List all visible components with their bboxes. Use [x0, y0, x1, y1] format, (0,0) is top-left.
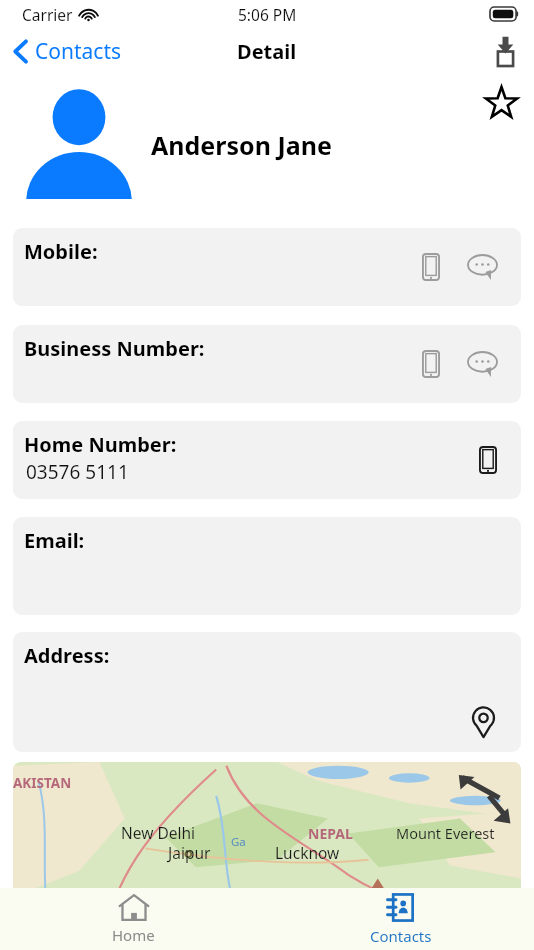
staticText: 03576 5111 — [26, 459, 129, 485]
staticText: New Delhi — [121, 822, 196, 843]
button[interactable]: Import contact — [494, 35, 534, 68]
button[interactable]: Expand map — [453, 774, 511, 826]
button[interactable]: Address: — [13, 632, 521, 752]
staticText: Home Number: — [24, 431, 177, 458]
staticText: Home — [112, 925, 155, 945]
staticText: Carrier — [22, 4, 73, 25]
button[interactable]: Contacts — [0, 32, 134, 71]
button[interactable]: Business Number: — [13, 325, 521, 403]
staticText: Ga — [231, 834, 246, 850]
button[interactable]: Open map — [471, 707, 521, 752]
button[interactable]: Map — [13, 762, 521, 950]
button[interactable]: Favorite — [484, 84, 534, 121]
staticText: Email: — [24, 527, 85, 554]
button[interactable]: Call — [476, 443, 500, 477]
staticText: Business Number: — [24, 335, 205, 362]
staticText: Mobile: — [24, 238, 98, 265]
button[interactable]: Email: — [13, 517, 521, 615]
staticText: AKISTAN — [13, 774, 72, 792]
staticText: Lucknow — [275, 842, 340, 863]
button[interactable]: Home Number: — [13, 421, 521, 499]
staticText: Contacts — [370, 926, 432, 946]
staticText: Detail — [237, 38, 297, 65]
button[interactable]: Mobile: — [13, 228, 521, 306]
staticText: Jaipur — [168, 842, 211, 863]
button[interactable]: Message — [465, 349, 500, 380]
button[interactable]: Message — [465, 252, 500, 283]
staticText: Address: — [24, 642, 110, 669]
button[interactable]: Home — [0, 890, 267, 949]
staticText: Anderson Jane — [151, 128, 332, 162]
staticText: NEPAL — [308, 824, 353, 843]
staticText: Mount Everest — [396, 823, 495, 843]
button[interactable]: Call — [419, 347, 443, 381]
staticText: 5:06 PM — [238, 4, 297, 25]
staticText: Contacts — [35, 37, 122, 66]
button[interactable]: Call — [419, 250, 443, 284]
button[interactable]: Contacts — [267, 889, 534, 950]
